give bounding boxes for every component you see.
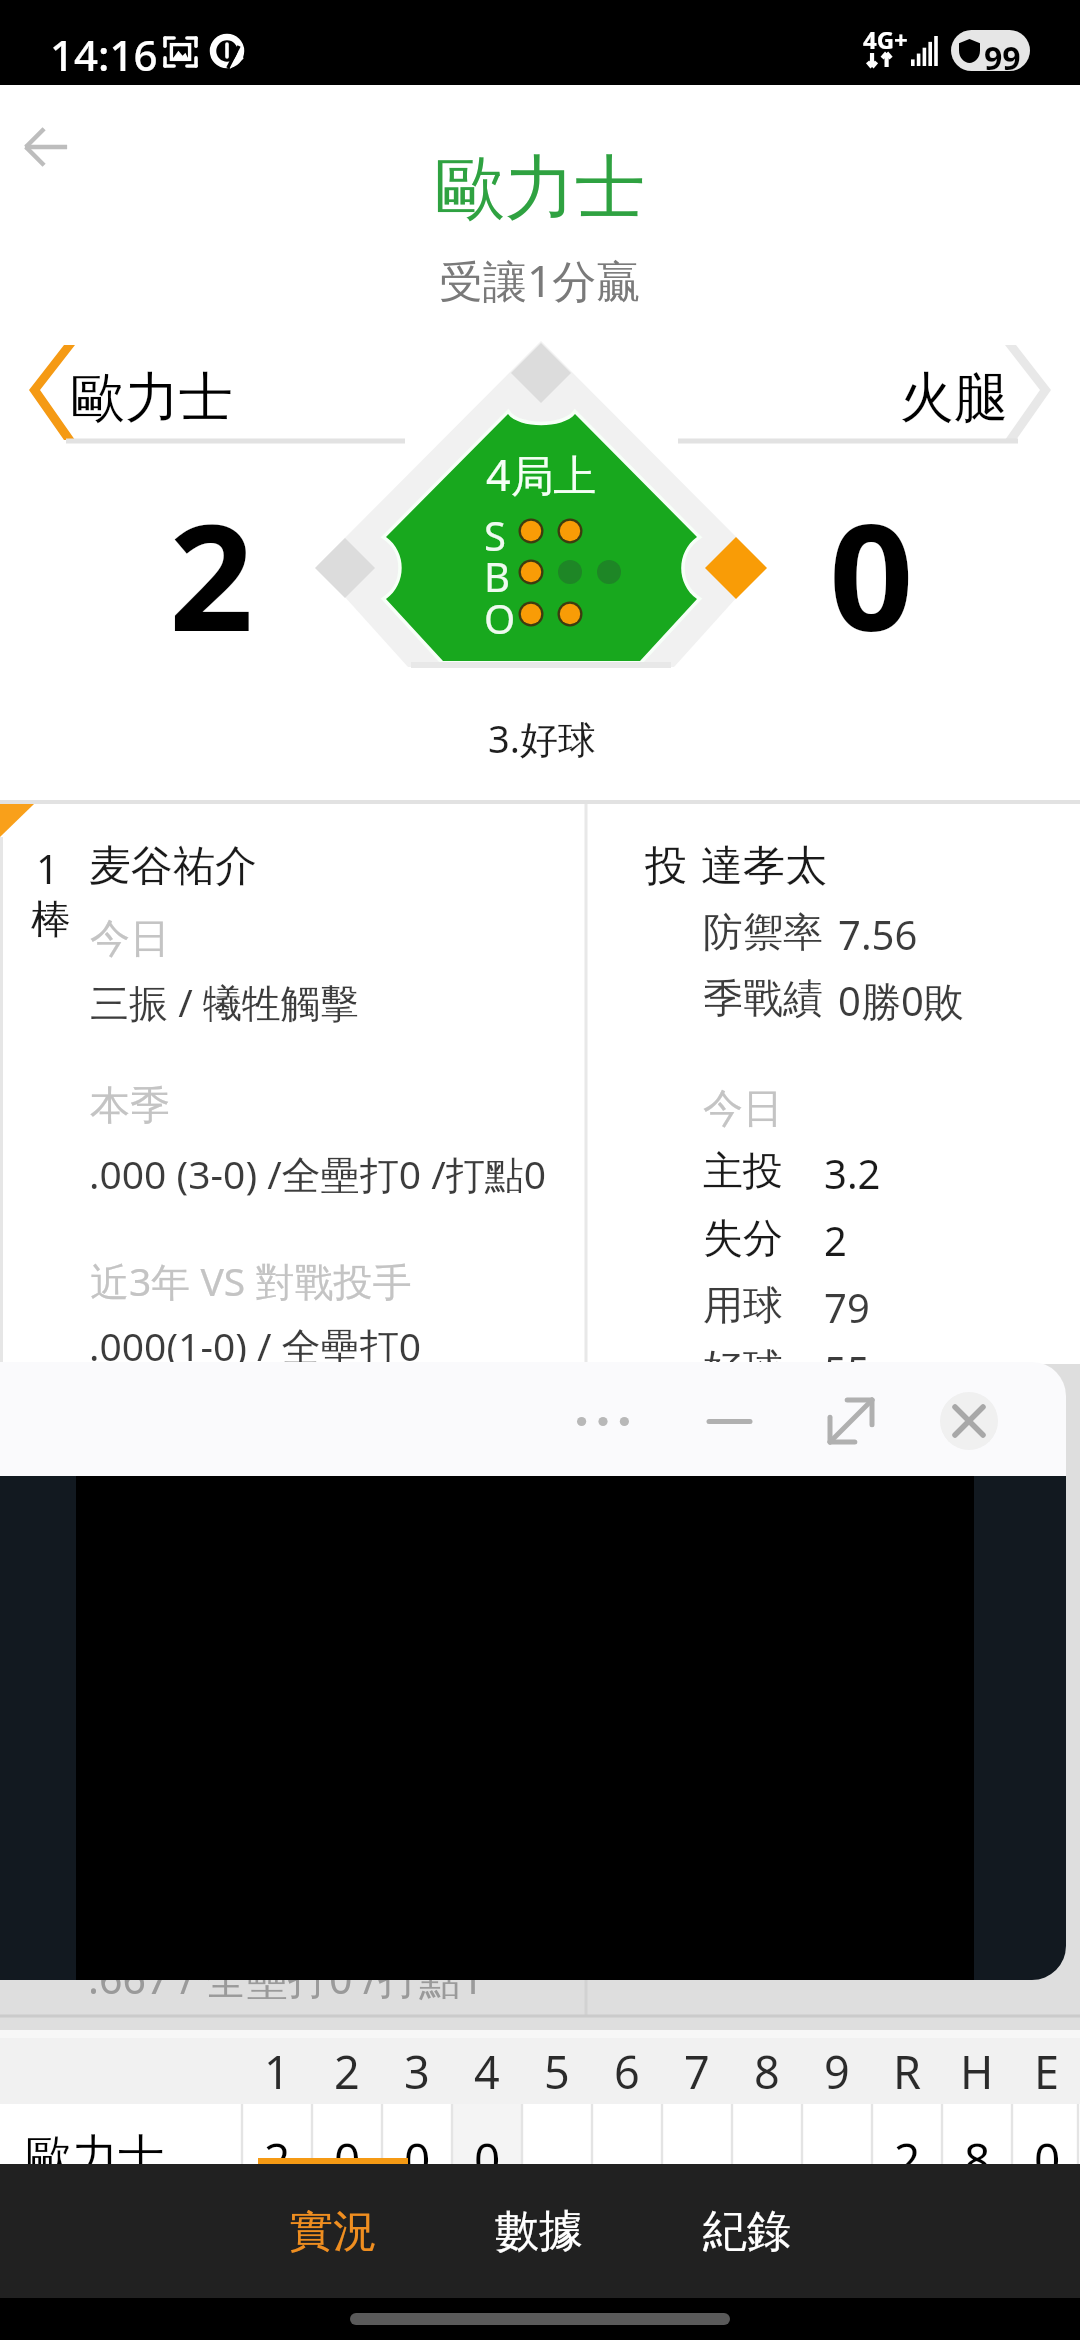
staticText: 2: [169, 473, 254, 675]
staticText: 數據: [495, 2204, 583, 2259]
staticText: 2: [824, 1213, 847, 1267]
staticText: 3.2: [824, 1146, 881, 1200]
staticText: 9: [824, 2041, 850, 2102]
staticText: 79: [824, 1280, 870, 1334]
staticText: 0: [829, 473, 914, 675]
staticText: 2: [334, 2041, 360, 2102]
button[interactable]: 紀錄: [644, 2164, 850, 2298]
staticText: 實況: [289, 2204, 377, 2259]
staticText: 受讓1分贏: [439, 250, 641, 310]
staticText: 2: [894, 2128, 921, 2188]
staticText: 歐力士: [71, 364, 233, 432]
staticText: E: [1034, 2041, 1060, 2102]
button[interactable]: 數據: [436, 2164, 642, 2298]
staticText: 4局上: [486, 445, 597, 504]
staticText: 用球: [703, 1280, 783, 1330]
staticText: 8: [964, 2128, 991, 2188]
button[interactable]: Back: [22, 123, 70, 171]
staticText: 歐力士: [435, 145, 645, 233]
staticText: 近3年 VS 對戰投手: [90, 1254, 412, 1307]
staticText: 1: [264, 2041, 290, 2102]
staticText: 三振 / 犧牲觸擊: [90, 975, 359, 1028]
staticText: S: [484, 508, 506, 562]
staticText: 今日: [703, 1083, 783, 1133]
staticText: H: [960, 2041, 994, 2102]
staticText: 棒: [31, 894, 71, 944]
button[interactable]: Close: [911, 1363, 1027, 1479]
staticText: 1: [36, 841, 59, 895]
staticText: 本季: [90, 1080, 170, 1130]
staticText: 2: [264, 2128, 291, 2188]
staticText: 7: [684, 2041, 710, 2102]
staticText: R: [893, 2041, 921, 2102]
staticText: 防禦率: [703, 907, 823, 957]
staticText: 0: [1034, 2128, 1061, 2188]
staticText: 投: [645, 840, 687, 893]
staticText: O: [484, 591, 516, 645]
staticText: 0: [334, 2128, 361, 2188]
staticText: 今日: [90, 913, 170, 963]
staticText: 3.好球: [488, 712, 596, 764]
staticText: 麦谷祐介: [89, 840, 257, 893]
staticText: 歐力士: [26, 2128, 164, 2186]
button[interactable]: Expand: [806, 1376, 896, 1466]
staticText: .667 / 全壘打0 /打點1: [88, 1950, 484, 2006]
staticText: 失分: [703, 1213, 783, 1263]
staticText: 6: [614, 2041, 640, 2102]
button[interactable]: More options: [558, 1376, 648, 1466]
staticText: 4: [474, 2041, 500, 2102]
staticText: 55: [824, 1343, 870, 1397]
staticText: 紀錄: [703, 2204, 791, 2259]
staticText: 7.56: [838, 907, 918, 961]
staticText: .000(1-0) / 全壘打0: [89, 1319, 422, 1372]
staticText: 0: [474, 2128, 501, 2188]
staticText: 99: [984, 36, 1021, 71]
staticText: 好球: [703, 1343, 783, 1393]
staticText: 8: [754, 2041, 780, 2102]
staticText: 5: [544, 2041, 570, 2102]
staticText: .000 (3-0) /全壘打0 /打點0: [89, 1147, 547, 1200]
staticText: 火腿: [900, 364, 1008, 432]
staticText: 14:16: [50, 26, 158, 83]
staticText: 4G+: [863, 23, 908, 56]
staticText: 主投: [703, 1146, 783, 1196]
button[interactable]: Minimise: [684, 1376, 774, 1466]
staticText: 3: [404, 2041, 430, 2102]
staticText: 季戰績: [703, 973, 823, 1023]
staticText: 達孝太: [701, 840, 827, 893]
button[interactable]: 實況: [230, 2164, 436, 2298]
staticText: B: [484, 549, 510, 603]
staticText: 0勝0敗: [838, 973, 964, 1028]
staticText: 0: [404, 2128, 431, 2188]
